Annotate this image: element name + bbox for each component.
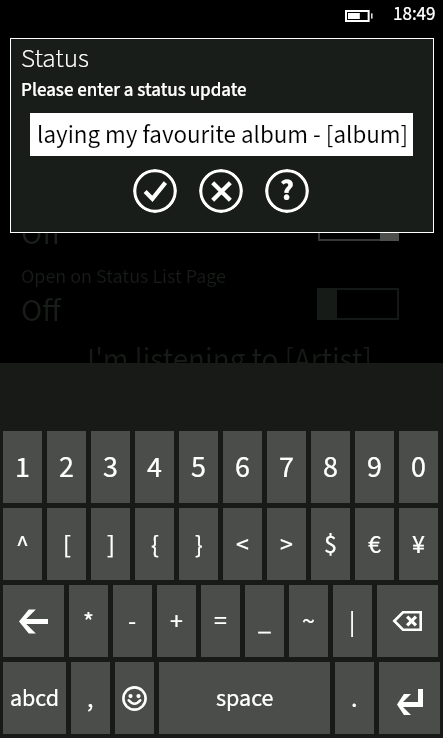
- staticText: =: [214, 603, 227, 640]
- button[interactable]: Help: [265, 169, 309, 213]
- staticText: ?: [280, 169, 294, 212]
- staticText: +: [170, 603, 183, 640]
- button[interactable]: -: [113, 585, 152, 657]
- staticText: *: [83, 603, 94, 640]
- staticText: 9: [367, 446, 382, 489]
- staticText: _: [258, 603, 272, 640]
- staticText: 18:49: [393, 1, 436, 28]
- staticText: 8: [323, 446, 338, 489]
- staticText: {: [151, 526, 159, 563]
- staticText: ~: [302, 603, 315, 640]
- staticText: -: [128, 603, 137, 640]
- staticText: Open on Status List Page: [21, 263, 227, 291]
- button[interactable]: =: [201, 585, 240, 657]
- button[interactable]: ]: [91, 508, 130, 580]
- button[interactable]: 3: [91, 431, 130, 503]
- button[interactable]: 5: [179, 431, 218, 503]
- staticText: laying my favourite album - [album]: [37, 117, 409, 153]
- button[interactable]: $: [311, 508, 350, 580]
- staticText: Off: [21, 211, 61, 257]
- staticText: 7: [279, 446, 294, 489]
- button[interactable]: 4: [135, 431, 174, 503]
- staticText: I'm listening to [Artist]: [87, 338, 372, 382]
- button[interactable]: 0: [399, 431, 438, 503]
- button[interactable]: >: [267, 508, 306, 580]
- button[interactable]: +: [157, 585, 196, 657]
- button[interactable]: .: [335, 662, 374, 734]
- staticText: }: [195, 526, 203, 563]
- button[interactable]: Backspace: [377, 585, 438, 657]
- button[interactable]: ,: [71, 662, 110, 734]
- staticText: €: [368, 526, 381, 563]
- button[interactable]: Shift: [3, 585, 64, 657]
- button[interactable]: 9: [355, 431, 394, 503]
- button[interactable]: laying my favourite album - [album]: [30, 113, 413, 156]
- button[interactable]: 6: [223, 431, 262, 503]
- button[interactable]: 7: [267, 431, 306, 503]
- staticText: >: [280, 526, 293, 563]
- button[interactable]: ¥: [399, 508, 438, 580]
- button[interactable]: Enter: [379, 662, 440, 734]
- staticText: Status: [21, 39, 89, 77]
- staticText: 5: [191, 446, 206, 489]
- button[interactable]: Toggle setting: [318, 210, 399, 241]
- staticText: 1: [15, 446, 30, 489]
- staticText: ¥: [412, 526, 425, 563]
- button[interactable]: Cancel: [199, 169, 243, 213]
- button[interactable]: ^: [3, 508, 42, 580]
- staticText: $: [324, 526, 337, 563]
- button[interactable]: Toggle open on status list page: [317, 288, 399, 320]
- staticText: 0: [411, 446, 426, 489]
- button[interactable]: Emoji: [115, 662, 154, 734]
- button[interactable]: <: [223, 508, 262, 580]
- staticText: 4: [147, 446, 162, 489]
- staticText: ,: [87, 680, 94, 717]
- button[interactable]: *: [69, 585, 108, 657]
- staticText: Please enter a status update: [21, 77, 247, 104]
- staticText: <: [236, 526, 249, 563]
- button[interactable]: Accept: [133, 169, 177, 213]
- staticText: 6: [235, 446, 250, 489]
- staticText: Off: [21, 288, 61, 334]
- button[interactable]: [: [47, 508, 86, 580]
- button[interactable]: ~: [289, 585, 328, 657]
- button[interactable]: }: [179, 508, 218, 580]
- other: Battery: [345, 10, 373, 22]
- staticText: ^: [16, 526, 29, 563]
- button[interactable]: abcd: [3, 662, 66, 734]
- button[interactable]: 1: [3, 431, 42, 503]
- staticText: ]: [107, 526, 115, 563]
- staticText: 2: [59, 446, 74, 489]
- button[interactable]: _: [245, 585, 284, 657]
- button[interactable]: {: [135, 508, 174, 580]
- staticText: [: [63, 526, 71, 563]
- staticText: 3: [103, 446, 118, 489]
- staticText: .: [351, 680, 358, 717]
- staticText: space: [216, 681, 274, 715]
- button[interactable]: 8: [311, 431, 350, 503]
- button[interactable]: €: [355, 508, 394, 580]
- staticText: abcd: [10, 681, 60, 715]
- button[interactable]: |: [333, 585, 372, 657]
- button[interactable]: space: [159, 662, 330, 734]
- staticText: |: [349, 603, 356, 640]
- button[interactable]: 2: [47, 431, 86, 503]
